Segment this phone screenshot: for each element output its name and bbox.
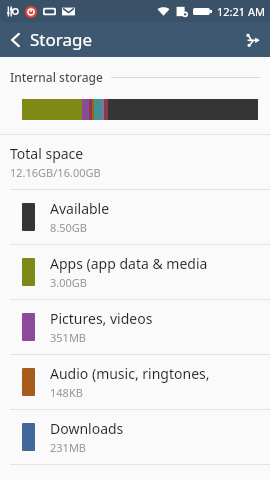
button[interactable]: Audio (music, ringtones, podcas.. [0,355,270,409]
staticText: 12.16GB/16.00GB [10,165,101,180]
staticText: Downloads [50,419,124,438]
staticText: Pictures, videos [50,309,153,328]
button[interactable]: Downloads [0,410,270,464]
staticText: 3.00GB [50,275,87,290]
staticText: 148KB [50,385,83,400]
staticText: 12:21 AM [217,4,265,19]
button[interactable]: Pictures, videos [0,300,270,354]
other: Back [8,32,24,48]
button[interactable]: Back [0,24,101,55]
staticText: Apps (app data & media content) [50,254,262,273]
staticText: Total space [10,144,84,163]
staticText: Available [50,199,110,218]
staticText: 231MB [50,440,87,455]
button[interactable]: Apps (app data & media content) [0,245,270,299]
staticText: 8.50GB [50,220,87,235]
staticText: Storage [30,28,93,51]
button[interactable]: Total space [0,135,270,189]
button[interactable]: Available [0,190,270,244]
staticText: 351MB [50,330,87,345]
button[interactable]: USB connection [234,26,270,54]
staticText: Internal storage [10,69,103,85]
staticText: Audio (music, ringtones, podcas.. [50,364,262,383]
